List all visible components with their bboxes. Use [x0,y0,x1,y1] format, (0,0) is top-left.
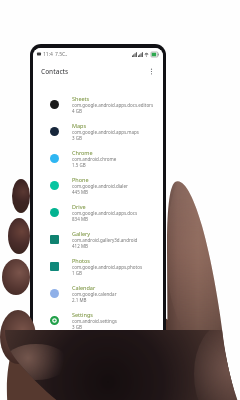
button[interactable]: More options [146,66,157,77]
staticText: 1.5 GB [72,162,86,168]
button[interactable]: Calendar [33,280,163,307]
staticText: com.android.chrome [72,156,117,162]
staticText: Drive [72,203,86,210]
staticText: com.google.android.dialer [72,183,128,189]
staticText: 445 MB [72,189,88,195]
staticText: com.google.android.apps.docs [72,210,138,216]
staticText: 412 MB [72,243,88,249]
staticText: 3 GB [72,135,82,141]
button[interactable]: Chrome [33,145,163,172]
staticText: Settings [72,311,93,318]
staticText: Contacts [41,67,69,76]
button[interactable]: Maps [33,118,163,145]
button[interactable]: Settings [33,307,163,334]
staticText: com.google.android.apps.docs.editors [72,102,154,108]
button[interactable]: Drive [33,199,163,226]
staticText: Maps [72,122,87,129]
button[interactable]: Sheets [33,91,163,118]
staticText: com.google.android.apps.maps [72,129,139,135]
staticText: Photos [72,257,91,264]
staticText: com.google.calendar [72,291,117,297]
staticText: 834 MB [72,216,88,222]
staticText: Chrome [72,149,93,156]
staticText: 2.1 MB [72,297,87,303]
staticText: com.android.gallery3d.android [72,237,138,243]
button[interactable]: Phone [33,172,163,199]
button[interactable]: Gallery [33,226,163,253]
staticText: com.google.android.apps.photos [72,264,143,270]
staticText: 7.5Cₒ [55,51,68,58]
staticText: Gallery [72,230,91,237]
staticText: com.android.settings [72,318,117,324]
staticText: 4 GB [72,108,82,114]
staticText: Phone [72,176,89,183]
staticText: Calendar [72,284,96,291]
button[interactable]: Photos [33,253,163,280]
staticText: 11:4 [43,51,53,58]
staticText: 1 GB [72,270,82,276]
staticText: Sheets [72,95,90,102]
staticText: 3 GB [72,324,82,330]
